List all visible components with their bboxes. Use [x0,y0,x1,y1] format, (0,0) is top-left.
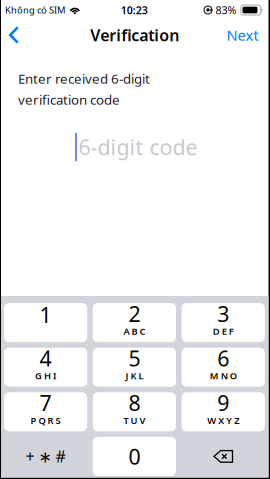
staticText: 10:23 [121,3,148,17]
staticText: 5 [128,344,140,372]
button[interactable]: 6 [182,348,265,387]
button[interactable]: 5 [93,348,176,387]
button[interactable]: 2 [93,303,176,342]
button[interactable]: 7 [4,392,87,431]
staticText: D E F [213,325,234,337]
staticText: J K L [125,369,143,382]
staticText: 8 [128,389,140,417]
staticText: 83% [215,3,236,17]
button[interactable]: 4 [4,348,87,387]
staticText: Next [226,25,258,45]
staticText: Không có SIM [5,4,65,16]
staticText: 0 [128,442,140,470]
button[interactable]: Back [1,20,31,50]
staticText: + ∗ # [26,446,66,467]
staticText: 9 [217,389,229,417]
staticText: T U V [123,414,145,426]
staticText: 3 [217,299,229,328]
staticText: 2 [128,299,140,328]
button[interactable]: 0 [93,437,176,476]
staticText: 7 [40,389,52,417]
button[interactable]: 1 [4,303,87,342]
staticText: W X Y Z [207,414,239,426]
staticText: 6-digit code [78,133,197,161]
button[interactable]: Next [216,19,268,51]
staticText: A B C [123,325,145,337]
button[interactable]: 8 [93,392,176,431]
staticText: G H I [35,369,56,382]
staticText: Enter received 6-digit [18,70,150,87]
staticText: M N O [210,369,237,382]
button[interactable]: Symbols [4,437,87,476]
staticText: 6 [217,344,229,372]
staticText: 1 [40,300,52,329]
button[interactable]: Delete [182,437,265,476]
button[interactable]: 3 [182,303,265,342]
staticText: Verification [90,24,179,46]
button[interactable]: 9 [182,392,265,431]
staticText: P Q R S [31,414,61,426]
staticText: verification code [18,91,120,108]
staticText: 4 [40,344,52,372]
